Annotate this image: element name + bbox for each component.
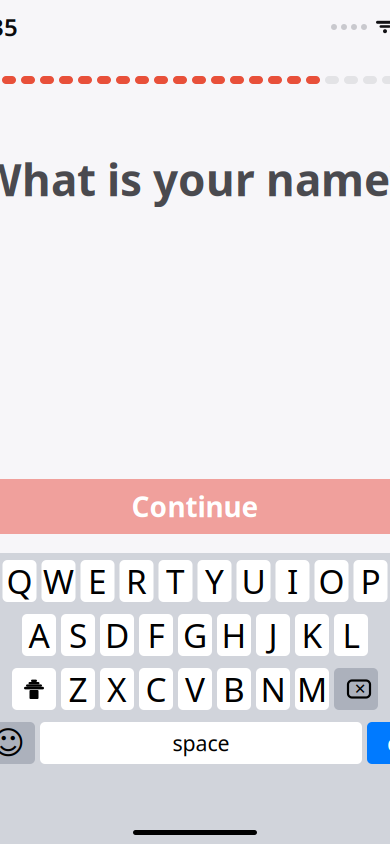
staticText: L bbox=[342, 613, 359, 657]
button[interactable]: J bbox=[256, 614, 290, 656]
button[interactable]: X bbox=[100, 668, 134, 710]
staticText: X bbox=[107, 667, 127, 711]
staticText: T bbox=[166, 559, 185, 603]
staticText: Y bbox=[205, 559, 224, 603]
button[interactable]: F bbox=[139, 614, 173, 656]
button[interactable]: Continue bbox=[0, 479, 390, 534]
staticText: ☺ bbox=[0, 725, 24, 761]
staticText: H bbox=[221, 613, 246, 657]
button[interactable]: done bbox=[367, 722, 390, 764]
button[interactable]: G bbox=[178, 614, 212, 656]
button[interactable]: D bbox=[100, 614, 134, 656]
button[interactable]: T bbox=[158, 560, 192, 602]
button[interactable]: P bbox=[353, 560, 387, 602]
button[interactable]: N bbox=[256, 668, 290, 710]
button[interactable]: L bbox=[334, 614, 368, 656]
staticText: done bbox=[387, 729, 390, 757]
staticText: D bbox=[105, 613, 129, 657]
button[interactable]: W bbox=[41, 560, 75, 602]
button[interactable]: space bbox=[40, 722, 362, 764]
button[interactable]: S bbox=[61, 614, 95, 656]
button[interactable]: R bbox=[119, 560, 153, 602]
staticText: G bbox=[183, 613, 207, 657]
button[interactable]: E bbox=[80, 560, 114, 602]
staticText: U bbox=[241, 559, 265, 603]
button[interactable]: Y bbox=[197, 560, 231, 602]
staticText: F bbox=[147, 613, 164, 657]
button[interactable]: Delete bbox=[334, 668, 378, 710]
staticText: Z bbox=[68, 667, 87, 711]
staticText: S bbox=[69, 613, 87, 657]
staticText: J bbox=[268, 613, 277, 657]
staticText: R bbox=[126, 559, 147, 603]
staticText: O bbox=[318, 559, 344, 603]
staticText: What is your name? bbox=[0, 150, 390, 208]
button[interactable]: U bbox=[236, 560, 270, 602]
staticText: I bbox=[287, 559, 298, 603]
button[interactable]: V bbox=[178, 668, 212, 710]
staticText: space bbox=[172, 729, 229, 757]
button[interactable]: H bbox=[217, 614, 251, 656]
button[interactable]: Z bbox=[61, 668, 95, 710]
button[interactable]: Q bbox=[2, 560, 36, 602]
staticText: Continue bbox=[131, 488, 258, 525]
staticText: A bbox=[28, 613, 49, 657]
staticText: M bbox=[297, 667, 327, 711]
staticText: ✕ bbox=[354, 681, 366, 697]
button[interactable]: M bbox=[295, 668, 329, 710]
staticText: W bbox=[43, 559, 74, 603]
staticText: V bbox=[185, 667, 205, 711]
button[interactable]: C bbox=[139, 668, 173, 710]
button[interactable]: Shift bbox=[12, 668, 56, 710]
staticText: N bbox=[260, 667, 285, 711]
button[interactable]: K bbox=[295, 614, 329, 656]
staticText: K bbox=[301, 613, 322, 657]
button[interactable]: Emoji bbox=[0, 722, 35, 764]
button[interactable]: O bbox=[314, 560, 348, 602]
staticText: E bbox=[88, 559, 107, 603]
staticText: C bbox=[145, 667, 166, 711]
button[interactable]: A bbox=[22, 614, 56, 656]
staticText: P bbox=[360, 559, 380, 603]
button[interactable]: I bbox=[275, 560, 309, 602]
staticText: 19:35 bbox=[0, 11, 18, 43]
button[interactable]: B bbox=[217, 668, 251, 710]
staticText: Q bbox=[6, 559, 32, 603]
staticText: B bbox=[223, 667, 245, 711]
